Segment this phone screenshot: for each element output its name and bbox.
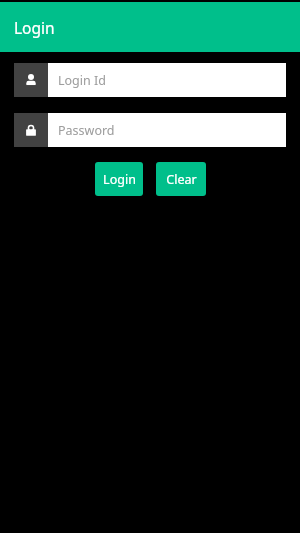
staticText: Password [58,122,115,139]
button[interactable]: Login Id [48,63,286,97]
button[interactable]: Password [14,113,48,147]
button[interactable]: User [14,63,48,97]
staticText: Login [14,17,55,38]
staticText: Login [103,171,136,188]
button[interactable]: Password [48,113,286,147]
button[interactable]: Login [95,162,143,196]
staticText: Clear [166,171,197,188]
button[interactable]: Clear [156,162,206,196]
staticText: Login Id [58,72,106,89]
